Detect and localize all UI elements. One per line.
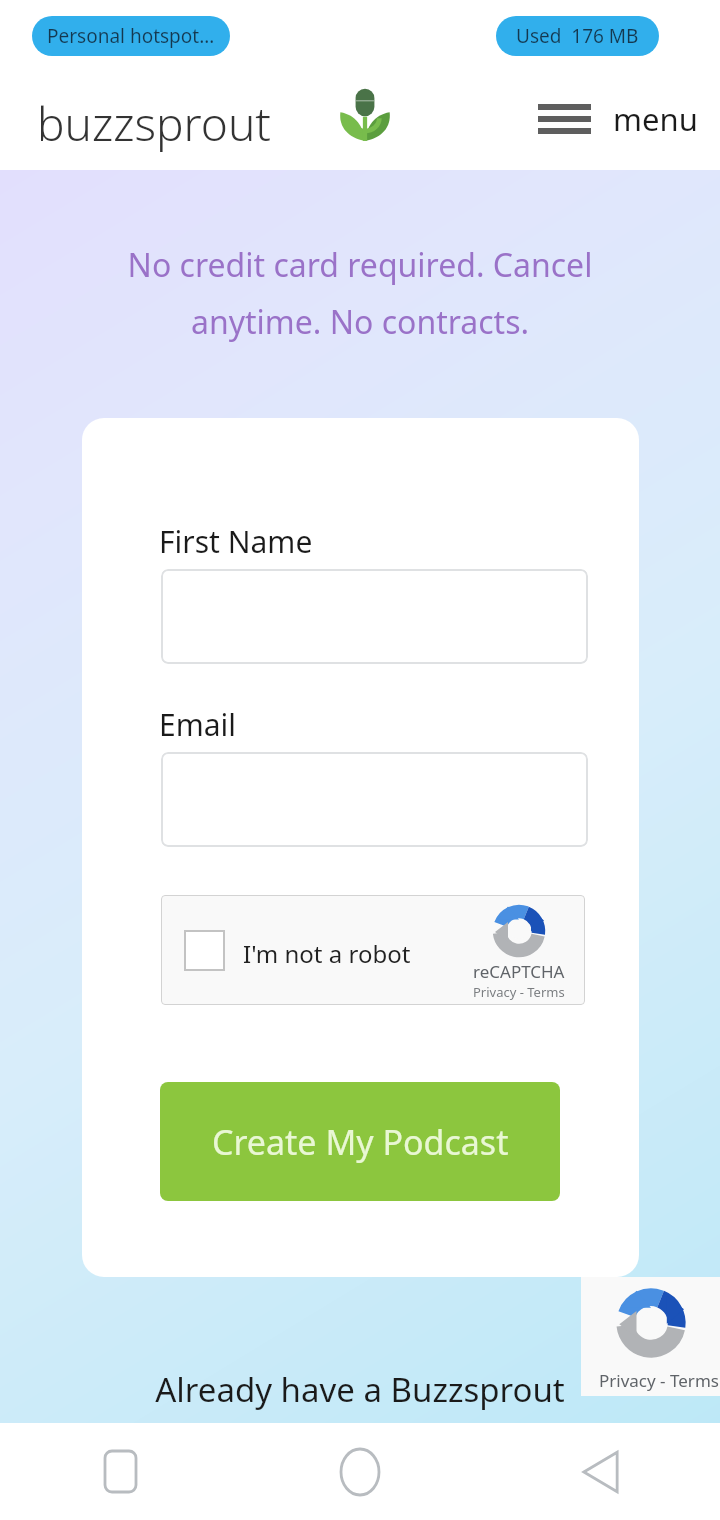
staticText: Used 176 MB: [516, 23, 639, 49]
staticText: Create My Podcast: [212, 1119, 509, 1165]
staticText: No credit card required. Cancel anytime.…: [46, 243, 674, 343]
button[interactable]: I'm not a robot: [184, 930, 225, 971]
staticText: First Name: [159, 521, 313, 562]
button[interactable]: Personal hotspot…: [32, 16, 230, 56]
button[interactable]: [161, 569, 588, 664]
staticText: Email: [159, 704, 237, 745]
button[interactable]: Back: [480, 1423, 720, 1520]
button[interactable]: Home: [240, 1423, 480, 1520]
button[interactable]: Used 176 MB: [496, 16, 659, 56]
staticText: reCAPTCHA: [473, 960, 565, 983]
button[interactable]: [161, 752, 588, 847]
button[interactable]: Recent apps: [0, 1423, 240, 1520]
staticText: menu: [613, 98, 698, 140]
staticText: I'm not a robot: [243, 937, 411, 970]
staticText: Already have a Buzzsprout: [0, 1367, 720, 1412]
button[interactable]: Open menu: [528, 90, 710, 148]
staticText: Privacy - Terms: [473, 983, 565, 1001]
staticText: buzzsprout: [37, 92, 271, 155]
button[interactable]: reCAPTCHA privacy and terms: [581, 1277, 720, 1396]
button[interactable]: Create My Podcast: [160, 1082, 560, 1201]
staticText: Privacy - Terms: [599, 1369, 719, 1392]
staticText: Personal hotspot…: [47, 23, 215, 49]
